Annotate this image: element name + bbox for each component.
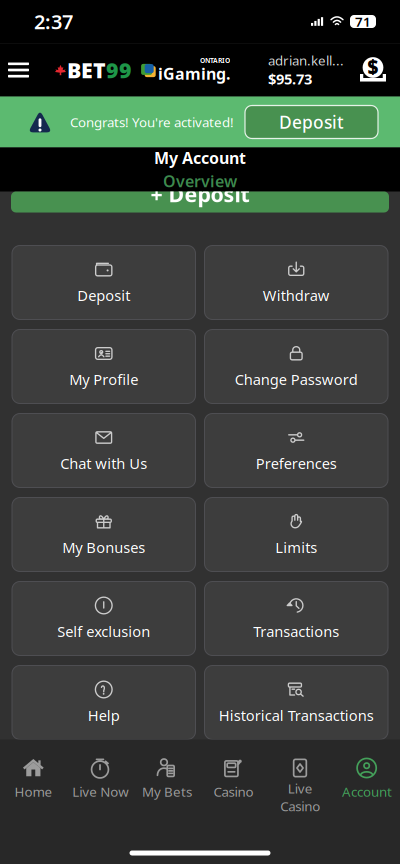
staticText: BET xyxy=(67,56,106,84)
staticText: Live Now xyxy=(72,783,128,800)
button[interactable]: Account xyxy=(333,756,400,800)
staticText: Preferences xyxy=(256,453,337,473)
button[interactable]: Chat with Us xyxy=(12,413,195,487)
button[interactable]: My Bonuses xyxy=(12,497,195,571)
button[interactable]: Withdraw xyxy=(204,245,388,319)
staticText: Withdraw xyxy=(263,285,330,305)
staticText: Self exclusion xyxy=(57,621,150,641)
button[interactable]: + Deposit xyxy=(0,191,400,212)
staticText: ONTARIO xyxy=(200,56,230,65)
staticText: Deposit xyxy=(279,110,344,133)
staticText: Deposit xyxy=(77,285,130,305)
button[interactable]: My Bets xyxy=(133,756,200,800)
button[interactable]: Help xyxy=(12,665,195,739)
button[interactable]: Menu xyxy=(0,55,37,85)
button[interactable]: Casino xyxy=(200,756,267,800)
staticText: adrian.kell... xyxy=(268,51,344,69)
staticText: $ xyxy=(367,54,378,79)
staticText: 71 xyxy=(355,13,371,30)
button[interactable]: Transactions xyxy=(204,581,388,655)
button[interactable]: Self exclusion xyxy=(12,581,195,655)
staticText: Historical Transactions xyxy=(219,705,374,725)
button[interactable]: Home xyxy=(0,756,67,800)
staticText: $95.73 xyxy=(268,69,312,89)
button[interactable]: Deposit xyxy=(245,105,378,138)
staticText: Casino xyxy=(213,783,253,800)
button[interactable]: Live Casino xyxy=(267,756,333,800)
button[interactable]: Historical Transactions xyxy=(204,665,388,739)
staticText: My Bets xyxy=(142,783,192,800)
staticText: Help xyxy=(88,705,120,725)
staticText: My Profile xyxy=(69,369,138,389)
staticText: My Bonuses xyxy=(62,537,145,557)
staticText: My Account xyxy=(154,147,246,168)
staticText: iGaming. xyxy=(158,63,230,84)
staticText: Overview xyxy=(163,170,237,192)
button[interactable]: Limits xyxy=(204,497,388,571)
button[interactable]: Preferences xyxy=(204,413,388,487)
staticText: 99 xyxy=(106,56,132,84)
button[interactable]: Live Now xyxy=(67,756,133,800)
staticText: 2:37 xyxy=(34,8,73,35)
staticText: Change Password xyxy=(235,369,358,389)
staticText: Chat with Us xyxy=(60,453,147,473)
staticText: Congrats! You're activated! xyxy=(70,113,234,131)
button[interactable]: Change Password xyxy=(204,329,388,403)
button[interactable]: Deposit xyxy=(12,245,195,319)
staticText: Transactions xyxy=(253,621,339,641)
button[interactable]: My Profile xyxy=(12,329,195,403)
staticText: Limits xyxy=(275,537,317,557)
button[interactable]: Deposit xyxy=(358,55,388,85)
staticText: Home xyxy=(14,783,52,800)
staticText: + Deposit xyxy=(150,180,249,208)
staticText: Live Casino xyxy=(280,779,320,815)
staticText: Account xyxy=(342,783,392,800)
